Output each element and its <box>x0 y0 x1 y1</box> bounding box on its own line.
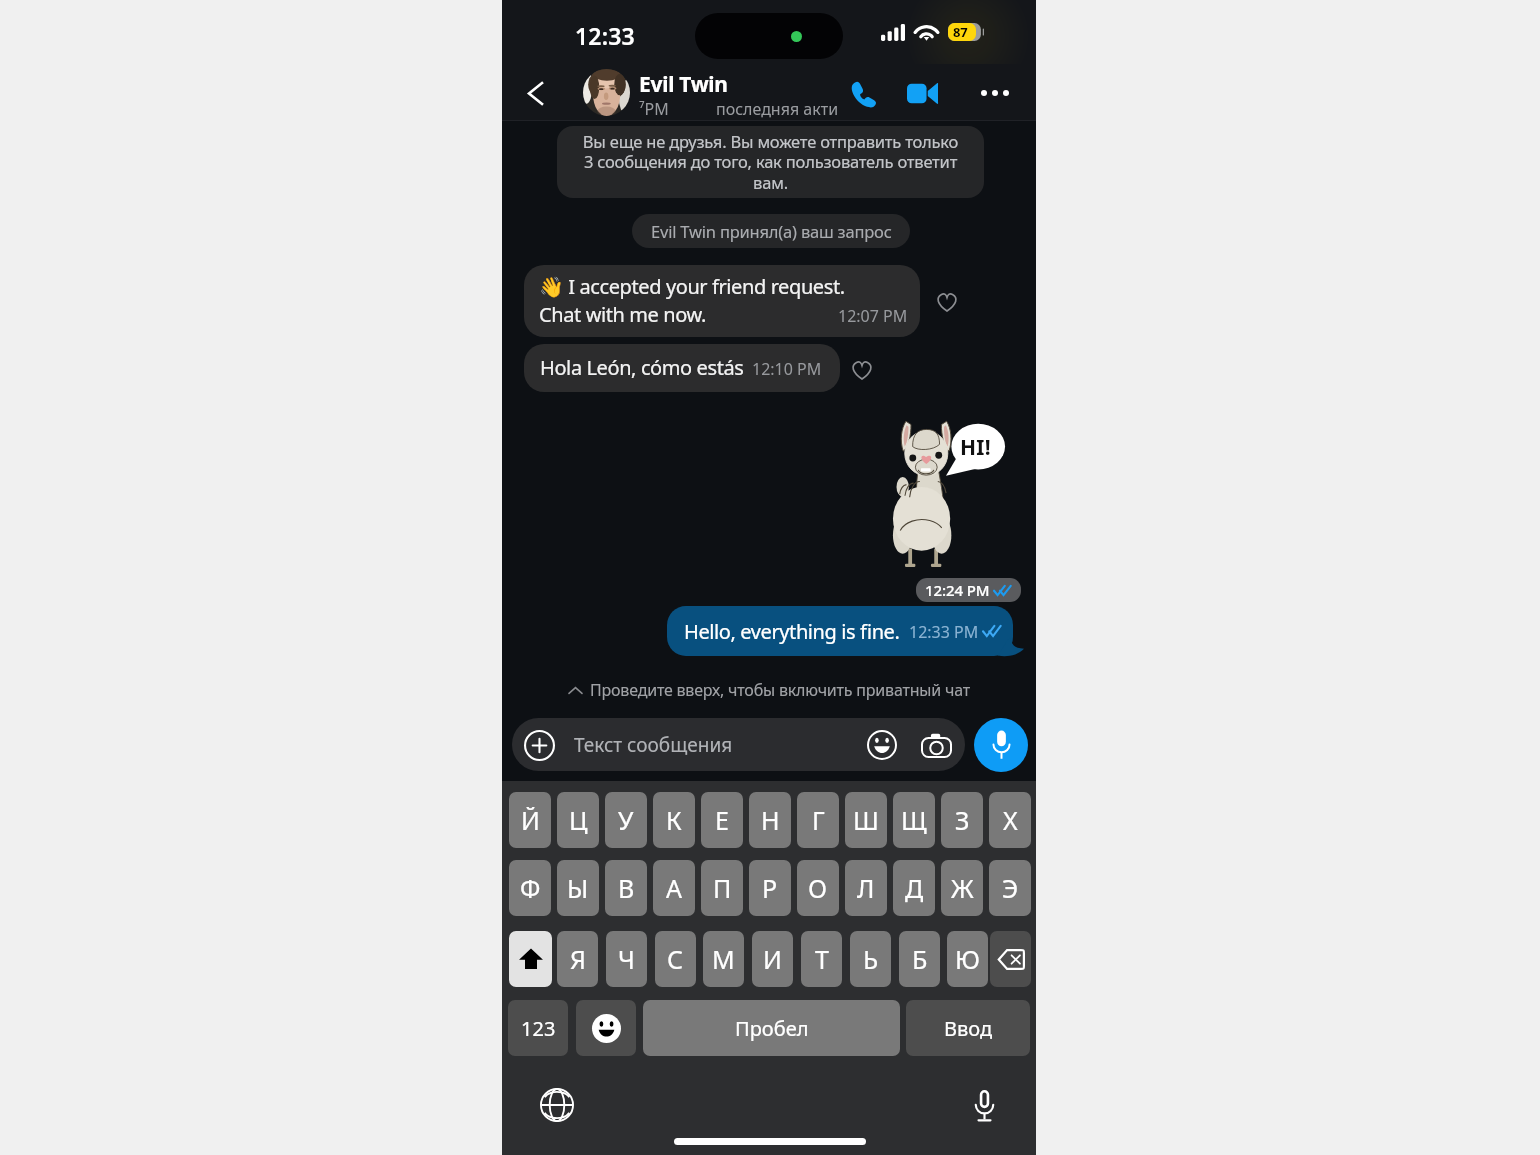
button[interactable]: Ввод <box>906 1000 1030 1056</box>
button[interactable]: 123 <box>508 1000 568 1056</box>
button[interactable]: Voice call <box>840 70 886 116</box>
staticText: Щ <box>901 803 927 837</box>
staticText: К <box>666 803 682 837</box>
button[interactable]: Like message <box>850 358 874 382</box>
button[interactable]: Ж <box>941 860 983 916</box>
staticText: Н <box>761 803 780 837</box>
button[interactable]: Н <box>749 792 791 848</box>
button[interactable]: Щ <box>893 792 935 848</box>
button[interactable]: Х <box>989 792 1031 848</box>
button[interactable]: Backspace <box>990 931 1031 987</box>
staticText: HI! <box>960 433 991 462</box>
staticText: Evil Twin принял(а) ваш запрос <box>651 220 892 242</box>
button[interactable]: Р <box>749 860 791 916</box>
staticText: А <box>666 871 682 905</box>
button[interactable]: Я <box>557 931 598 987</box>
staticText: 87 <box>953 23 968 41</box>
staticText: Е <box>715 803 729 837</box>
button[interactable]: Ь <box>850 931 891 987</box>
staticText: Ь <box>863 942 879 976</box>
button[interactable]: Г <box>797 792 839 848</box>
staticText: Д <box>905 871 924 905</box>
staticText: 12:24 PM <box>925 580 990 600</box>
staticText: Б <box>912 942 928 976</box>
staticText: Т <box>815 942 829 976</box>
button[interactable]: Evil Twin <box>583 65 863 120</box>
button[interactable]: Б <box>899 931 940 987</box>
button[interactable]: И <box>752 931 793 987</box>
staticText: Chat with me now. <box>539 301 707 328</box>
button[interactable]: Ю <box>947 931 988 987</box>
button[interactable]: Like message <box>935 290 959 314</box>
staticText: 123 <box>521 1015 556 1042</box>
button[interactable]: Change keyboard language <box>535 1083 579 1127</box>
button[interactable]: Add attachment <box>518 724 560 766</box>
button[interactable]: К <box>653 792 695 848</box>
button[interactable]: Й <box>509 792 551 848</box>
button[interactable]: З <box>941 792 983 848</box>
button[interactable]: У <box>605 792 647 848</box>
staticText: Ы <box>567 871 589 905</box>
staticText: 12:33 PM <box>909 621 979 643</box>
staticText: М <box>712 942 735 976</box>
button[interactable]: Emoji <box>862 725 902 765</box>
staticText: Ю <box>955 942 980 976</box>
staticText: Проведите вверх, чтобы включить приватны… <box>590 679 970 701</box>
button[interactable]: More options <box>972 70 1018 116</box>
staticText: 12:07 PM <box>838 305 908 327</box>
button[interactable]: Camera <box>916 725 956 765</box>
button[interactable]: Е <box>701 792 743 848</box>
button[interactable]: В <box>605 860 647 916</box>
staticText: Evil Twin <box>639 70 728 99</box>
button[interactable]: Emoji keyboard <box>576 1000 636 1056</box>
button[interactable]: Ч <box>606 931 647 987</box>
staticText: Вы еще не друзья. Вы можете отправить то… <box>557 130 984 194</box>
staticText: 👋 I accepted your friend request. <box>539 273 845 300</box>
staticText: В <box>618 871 635 905</box>
button[interactable]: Э <box>989 860 1031 916</box>
staticText: Й <box>521 803 540 837</box>
button[interactable]: Ц <box>557 792 599 848</box>
button[interactable]: М <box>703 931 744 987</box>
staticText: 12:10 PM <box>752 358 822 380</box>
button[interactable]: Back <box>514 72 556 114</box>
staticText: Hello, everything is fine. <box>684 618 900 645</box>
button[interactable]: Д <box>893 860 935 916</box>
staticText: Х <box>1003 803 1018 837</box>
staticText: ⁷PM <box>639 98 669 120</box>
staticText: Hola León, cómo estás <box>540 354 744 381</box>
staticText: Я <box>570 942 586 976</box>
button[interactable]: П <box>701 860 743 916</box>
staticText: Ч <box>618 942 635 976</box>
staticText: У <box>618 803 634 837</box>
staticText: Текст сообщения <box>574 732 733 758</box>
staticText: 12:33 <box>575 20 635 51</box>
button[interactable]: Л <box>845 860 887 916</box>
button[interactable]: Т <box>801 931 842 987</box>
button[interactable]: Video call <box>899 70 945 116</box>
button[interactable]: Hola León, cómo estás <box>524 344 840 392</box>
staticText: Л <box>857 871 875 905</box>
button[interactable]: О <box>797 860 839 916</box>
staticText: Ж <box>951 871 974 905</box>
staticText: П <box>713 871 732 905</box>
staticText: О <box>808 871 828 905</box>
button[interactable]: С <box>655 931 696 987</box>
staticText: Ц <box>569 803 588 837</box>
button[interactable]: 👋 I accepted your friend request. <box>524 265 920 337</box>
staticText: последняя акти <box>716 98 839 120</box>
button[interactable]: Ы <box>557 860 599 916</box>
button[interactable]: А <box>653 860 695 916</box>
button[interactable]: Shift <box>509 931 552 987</box>
button[interactable]: Ш <box>845 792 887 848</box>
staticText: Ш <box>853 803 879 837</box>
staticText: Ф <box>520 871 541 905</box>
button[interactable]: Dictation <box>962 1083 1006 1127</box>
button[interactable]: Add attachment <box>512 718 965 771</box>
button[interactable]: Пробел <box>643 1000 900 1056</box>
staticText: З <box>955 803 970 837</box>
button[interactable]: Ф <box>509 860 551 916</box>
staticText: Э <box>1002 871 1019 905</box>
staticText: Р <box>762 871 778 905</box>
button[interactable]: Record voice message <box>974 718 1028 772</box>
